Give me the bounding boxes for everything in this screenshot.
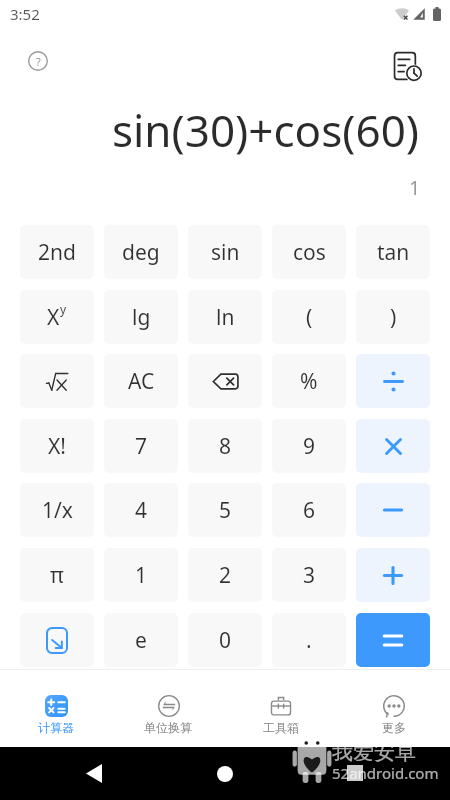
staticText: y <box>60 301 67 317</box>
staticText: 3 <box>303 561 316 590</box>
staticText: 3:52 <box>10 4 40 24</box>
staticText: . <box>306 626 312 655</box>
button[interactable]: 1 <box>104 548 178 602</box>
staticText: 7 <box>135 432 148 461</box>
button[interactable]: X <box>20 290 94 344</box>
staticText: 6 <box>303 496 316 525</box>
button[interactable]: π <box>20 548 94 602</box>
staticText: deg <box>122 238 160 267</box>
staticText: tan <box>377 238 410 267</box>
staticText: 更多 <box>382 720 406 735</box>
staticText: ? <box>36 54 41 69</box>
staticText: 4 <box>135 496 148 525</box>
staticText: lg <box>132 303 151 332</box>
staticText: π <box>50 561 64 590</box>
staticText: ln <box>216 303 235 332</box>
button[interactable] <box>356 419 430 473</box>
button[interactable]: History <box>389 47 426 84</box>
staticText: AC <box>128 367 155 396</box>
button[interactable]: 6 <box>272 483 346 537</box>
button[interactable]: 更多 <box>337 669 450 741</box>
staticText: % <box>300 367 318 396</box>
button[interactable]: tan <box>356 225 430 279</box>
button[interactable]: . <box>272 613 346 667</box>
button[interactable]: deg <box>104 225 178 279</box>
staticText: 2 <box>219 561 232 590</box>
staticText: 计算器 <box>38 720 74 735</box>
staticText: 我爱安卓 <box>332 739 416 765</box>
button[interactable] <box>356 354 430 408</box>
staticText: 9 <box>303 432 316 461</box>
staticText: 1/x <box>42 496 73 525</box>
button[interactable]: 0 <box>188 613 262 667</box>
button[interactable] <box>356 613 430 667</box>
staticText: sin <box>211 238 240 267</box>
other: Back <box>86 764 102 783</box>
button[interactable]: 单位换算 <box>112 669 224 741</box>
button[interactable]: Help <box>22 45 54 77</box>
button[interactable] <box>20 354 94 408</box>
staticText: 单位换算 <box>144 720 192 735</box>
staticText: 1 <box>409 175 420 201</box>
staticText: 2nd <box>38 238 76 267</box>
button[interactable] <box>356 483 430 537</box>
button[interactable]: 4 <box>104 483 178 537</box>
button[interactable] <box>188 354 262 408</box>
staticText: e <box>135 626 147 655</box>
button[interactable]: ( <box>272 290 346 344</box>
staticText: X! <box>48 432 66 461</box>
button[interactable] <box>356 548 430 602</box>
button[interactable]: e <box>104 613 178 667</box>
staticText: 8 <box>219 432 232 461</box>
button[interactable]: 8 <box>188 419 262 473</box>
staticText: 1 <box>135 561 148 590</box>
button[interactable]: 1/x <box>20 483 94 537</box>
button[interactable]: ln <box>188 290 262 344</box>
button[interactable]: % <box>272 354 346 408</box>
staticText: 5 <box>219 496 232 525</box>
staticText: sin(30)+cos(60) <box>111 100 419 160</box>
staticText: 工具箱 <box>263 720 299 735</box>
button[interactable]: 2nd <box>20 225 94 279</box>
staticText: ( <box>306 303 313 332</box>
other: Home <box>217 766 233 782</box>
button[interactable]: 5 <box>188 483 262 537</box>
staticText: 52android.com <box>332 763 439 783</box>
staticText: cos <box>293 238 326 267</box>
button[interactable]: 3 <box>272 548 346 602</box>
button[interactable]: ) <box>356 290 430 344</box>
button[interactable]: 7 <box>104 419 178 473</box>
button[interactable]: 2 <box>188 548 262 602</box>
staticText: X <box>47 303 60 332</box>
button[interactable]: 工具箱 <box>224 669 337 741</box>
button[interactable] <box>20 613 94 667</box>
button[interactable]: AC <box>104 354 178 408</box>
staticText: ) <box>390 303 397 332</box>
button[interactable]: sin <box>188 225 262 279</box>
staticText: 0 <box>219 626 232 655</box>
button[interactable]: X! <box>20 419 94 473</box>
button[interactable]: 计算器 <box>0 669 112 741</box>
button[interactable]: lg <box>104 290 178 344</box>
button[interactable]: 9 <box>272 419 346 473</box>
button[interactable]: cos <box>272 225 346 279</box>
